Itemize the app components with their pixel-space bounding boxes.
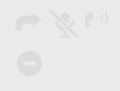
button[interactable]: Speaker (85, 9, 114, 27)
button[interactable]: Remove (17, 51, 42, 76)
button[interactable]: Mute (49, 10, 77, 37)
button[interactable]: Share (15, 10, 41, 31)
